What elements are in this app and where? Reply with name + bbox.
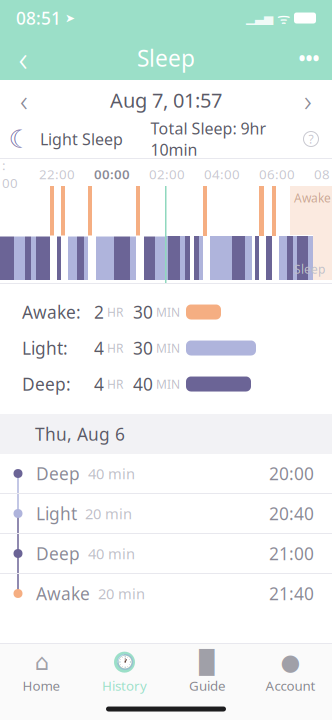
staticText: 22:00 [39,165,75,183]
staticText: ⌂ [34,649,48,675]
staticText: 30 [123,336,153,359]
staticText: Aug 7, 01:57 [110,87,222,113]
staticText: HR [104,376,123,392]
staticText: Light Sleep [40,128,123,150]
staticText: MIN [153,376,180,392]
button[interactable]: Deep [0,533,332,573]
staticText: 40 min [80,544,135,563]
button[interactable]: More options [286,36,332,80]
staticText: Total Sleep: 9hr 10min [150,118,266,160]
staticText: Deep [36,462,80,485]
staticText: 08 [314,165,330,183]
staticText: :00 [2,156,18,192]
staticText: Thu, Aug 6 [35,422,125,445]
staticText: ‹ [18,35,27,81]
button[interactable]: Next day [284,80,332,120]
staticText: Sleep [294,261,325,277]
staticText: 21:00 [269,542,314,565]
staticText: ? [308,131,313,147]
button[interactable]: Previous day [0,80,48,120]
staticText: 🕐 [115,654,133,671]
staticText: 20 min [90,584,145,603]
button[interactable]: Light [0,493,332,533]
staticText: ••• [298,46,319,70]
staticText: HR [104,340,123,356]
staticText: 21:40 [269,582,314,605]
staticText: ☾ [8,125,31,153]
staticText: ➤ [61,11,75,25]
button[interactable]: Help [294,121,328,157]
staticText: MIN [153,340,180,356]
staticText: ᯤ [273,8,294,28]
button[interactable]: Awake [0,573,332,613]
staticText: 02:00 [149,165,185,183]
staticText: 08:51 [16,6,61,29]
staticText: › [304,80,312,119]
button[interactable]: ▉ [166,648,249,698]
staticText: History [102,677,147,694]
staticText: Sleep [137,43,195,73]
staticText: Light [36,502,77,525]
staticText: ▉ [199,649,216,675]
staticText: 00:00 [94,165,130,183]
staticText: ▁▃▅ [246,11,273,25]
staticText: Light: [22,336,68,359]
staticText: 40 [123,372,153,395]
staticText: Awake [294,190,331,206]
staticText: 2 [94,300,104,323]
staticText: Deep: [22,372,71,395]
staticText: 4 [94,372,104,395]
staticText: 20 min [77,504,132,523]
staticText: 20:00 [269,462,314,485]
staticText: 40 min [80,464,135,483]
staticText: Awake: [22,300,81,323]
staticText: 30 [123,300,153,323]
staticText: MIN [153,304,180,320]
staticText: 04:00 [204,165,240,183]
button[interactable]: 🕐 [83,648,166,698]
staticText: Account [265,677,315,694]
staticText: HR [104,304,123,320]
staticText: ● [280,649,300,675]
staticText: 4 [94,336,104,359]
staticText: Home [22,677,60,694]
button[interactable]: ⌂ [0,648,83,698]
staticText: 20:40 [269,502,314,525]
button[interactable]: Back [0,36,46,80]
staticText: ‹ [20,80,28,119]
staticText: Awake [36,582,90,605]
staticText: Deep [36,542,80,565]
staticText: Guide [189,677,226,694]
button[interactable]: Deep [0,454,332,493]
staticText: 06:00 [259,165,295,183]
button[interactable]: ● [249,648,332,698]
